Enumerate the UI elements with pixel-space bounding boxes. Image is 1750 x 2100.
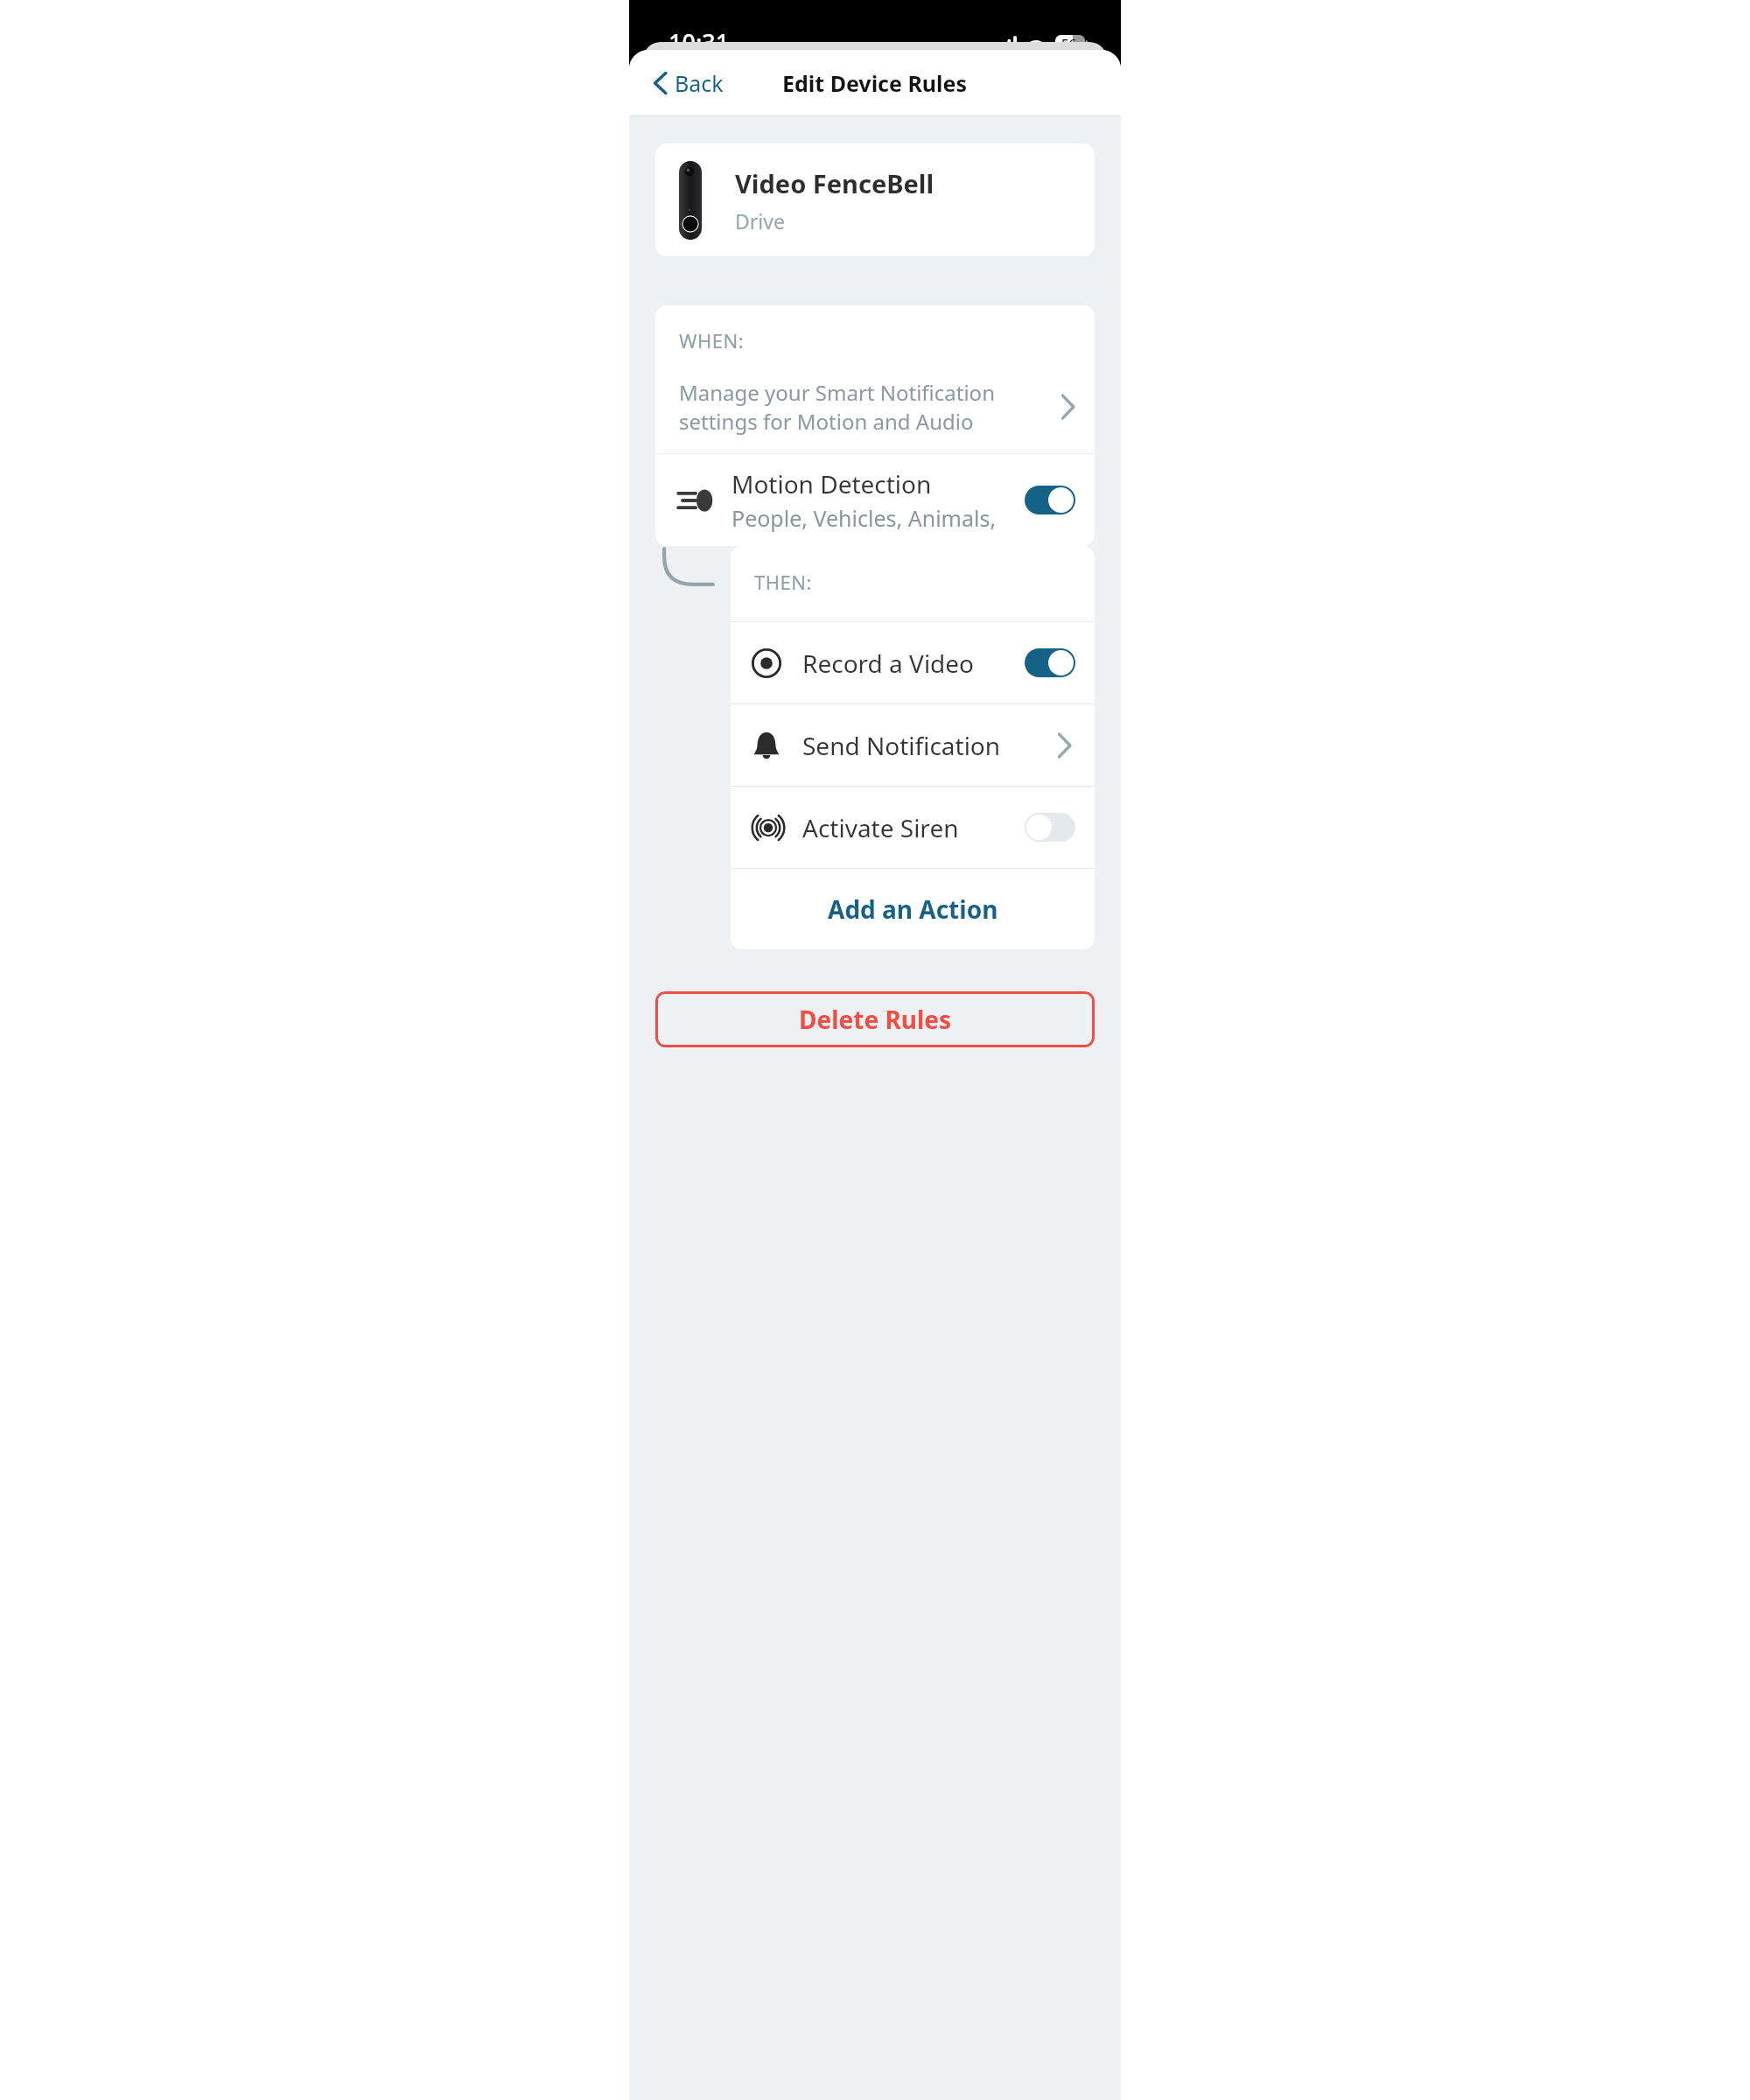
- staticText: Edit Device Rules: [782, 68, 968, 98]
- button[interactable]: Toggle off: [1025, 813, 1075, 842]
- staticText: 10:31: [668, 26, 730, 59]
- staticText: People, Vehicles, Animals, Fire...: [731, 503, 1019, 533]
- staticText: Add an Action: [828, 892, 998, 926]
- button[interactable]: Video FenceBell: [655, 143, 1095, 256]
- staticText: Motion Detection: [731, 467, 932, 500]
- button[interactable]: Toggle on: [1025, 648, 1075, 677]
- other: Siren: [752, 815, 785, 841]
- staticText: Delete Rules: [799, 1003, 952, 1036]
- staticText: WHEN:: [679, 327, 745, 353]
- staticText: Manage your Smart Notification settings …: [679, 378, 1045, 436]
- other: Notification: [752, 731, 781, 760]
- button[interactable]: Add an Action: [731, 869, 1095, 949]
- staticText: Send Notification: [802, 729, 1057, 762]
- staticText: Record a Video: [802, 647, 1025, 680]
- button[interactable]: Manage your Smart Notification settings …: [655, 353, 1095, 453]
- button[interactable]: Delete Rules: [655, 991, 1095, 1047]
- button[interactable]: Record: [731, 622, 1095, 703]
- button[interactable]: Back: [647, 63, 731, 103]
- staticText: Activate Siren: [802, 811, 1025, 844]
- other: Motion: [676, 486, 715, 515]
- staticText: THEN:: [754, 569, 812, 595]
- button[interactable]: Toggle on: [1025, 486, 1075, 514]
- button[interactable]: Motion: [655, 454, 1095, 546]
- staticText: Drive: [735, 207, 785, 234]
- button[interactable]: Siren: [731, 787, 1095, 868]
- button[interactable]: Notification: [731, 704, 1095, 786]
- other: Record: [752, 648, 781, 678]
- staticText: 56: [1061, 34, 1077, 52]
- staticText: Back: [675, 68, 724, 98]
- staticText: Video FenceBell: [735, 166, 934, 200]
